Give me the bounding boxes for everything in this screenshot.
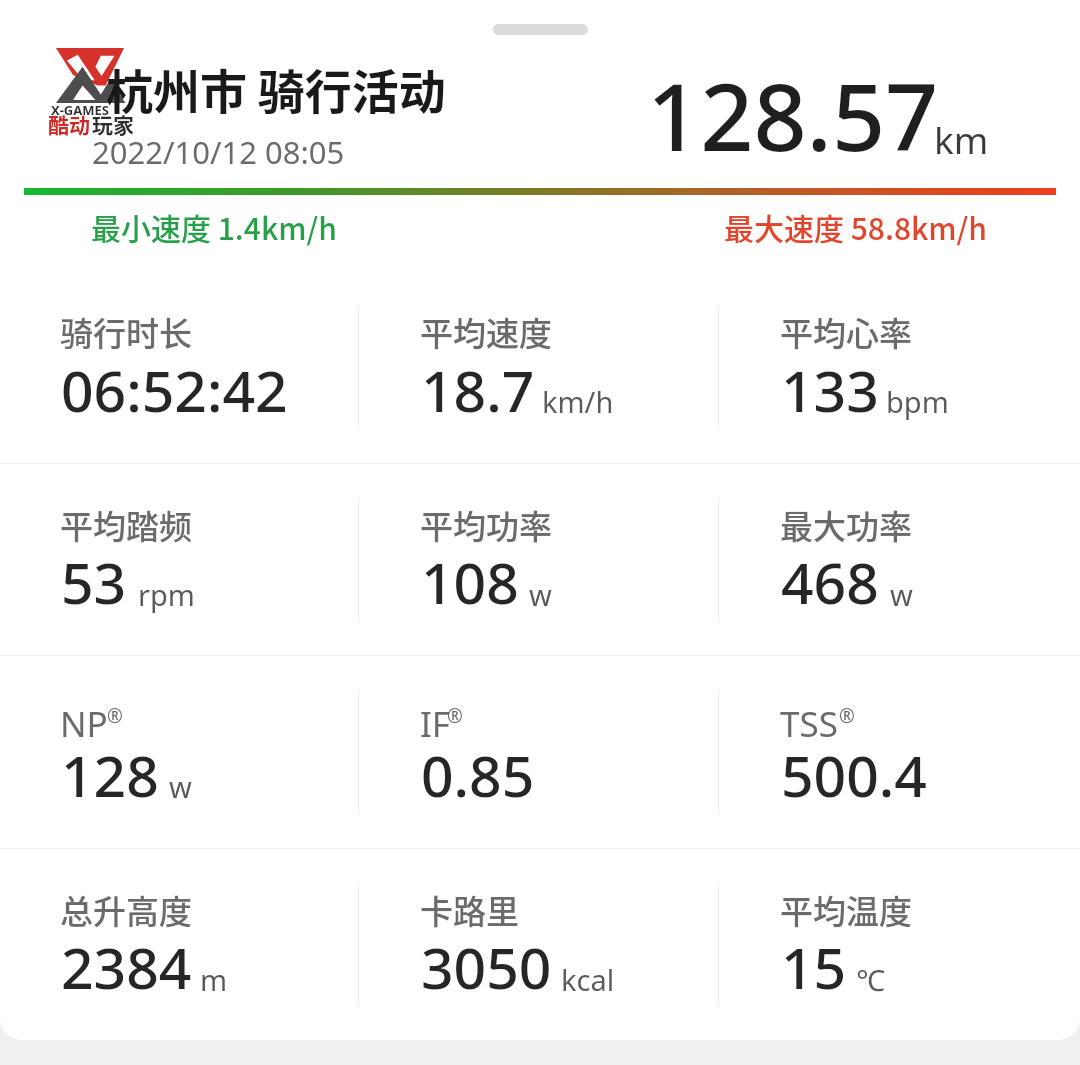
button[interactable] xyxy=(360,464,720,657)
staticText: 最大速度 58.8km/h xyxy=(724,205,987,248)
button[interactable] xyxy=(360,271,720,464)
staticText: ℃ xyxy=(856,960,885,999)
staticText: 128 xyxy=(61,736,159,814)
staticText: 0.85 xyxy=(421,736,535,814)
staticText: 108 xyxy=(421,543,519,621)
staticText: 3050 xyxy=(421,928,552,1006)
staticText: 2022/10/12 08:05 xyxy=(92,131,345,173)
button[interactable]: Drag handle xyxy=(493,24,588,35)
staticText: 平均心率 xyxy=(780,308,912,356)
staticText: 酷动 xyxy=(48,109,90,139)
staticText: km/h xyxy=(542,382,614,421)
staticText: 15 xyxy=(781,928,847,1006)
staticText: 平均功率 xyxy=(420,501,552,549)
staticText: 平均踏频 xyxy=(60,501,192,549)
staticText: 玩家 xyxy=(92,109,134,139)
staticText: 500.4 xyxy=(781,736,927,814)
staticText: 最小速度 1.4km/h xyxy=(91,205,337,248)
staticText: m xyxy=(200,960,228,999)
staticText: km xyxy=(934,114,989,164)
staticText: ® xyxy=(107,703,123,729)
staticText: 最大功率 xyxy=(780,501,912,549)
staticText: bpm xyxy=(886,382,949,421)
button[interactable] xyxy=(720,849,1080,1040)
staticText: w xyxy=(890,575,913,614)
staticText: ® xyxy=(447,703,463,729)
button[interactable]: X-GAMES 酷动玩家 logo xyxy=(44,44,140,136)
staticText: 53 xyxy=(61,543,127,621)
button[interactable] xyxy=(0,464,360,657)
staticText: TSS xyxy=(780,700,838,748)
staticText: 平均速度 xyxy=(420,308,552,356)
staticText: kcal xyxy=(561,960,615,999)
staticText: 06:52:42 xyxy=(61,351,288,429)
staticText: 杭州市 骑行活动 xyxy=(106,54,446,122)
button[interactable] xyxy=(720,271,1080,464)
staticText: ® xyxy=(839,703,855,729)
staticText: 128.57 xyxy=(647,52,939,179)
staticText: NP xyxy=(60,700,108,748)
staticText: w xyxy=(529,575,552,614)
button[interactable] xyxy=(720,464,1080,657)
staticText: X-GAMES xyxy=(51,101,109,119)
staticText: 18.7 xyxy=(421,351,535,429)
button[interactable] xyxy=(360,656,720,849)
button[interactable] xyxy=(360,849,720,1040)
button[interactable] xyxy=(0,656,360,849)
staticText: IF xyxy=(420,700,451,748)
staticText: 133 xyxy=(781,351,879,429)
button[interactable] xyxy=(0,271,360,464)
staticText: 2384 xyxy=(61,928,192,1006)
staticText: 总升高度 xyxy=(60,886,192,934)
staticText: 骑行时长 xyxy=(60,308,192,356)
button[interactable] xyxy=(720,656,1080,849)
staticText: 468 xyxy=(781,543,879,621)
staticText: w xyxy=(169,767,192,806)
button[interactable] xyxy=(0,849,360,1040)
staticText: 平均温度 xyxy=(780,886,912,934)
staticText: rpm xyxy=(138,575,195,614)
staticText: 卡路里 xyxy=(420,886,519,934)
